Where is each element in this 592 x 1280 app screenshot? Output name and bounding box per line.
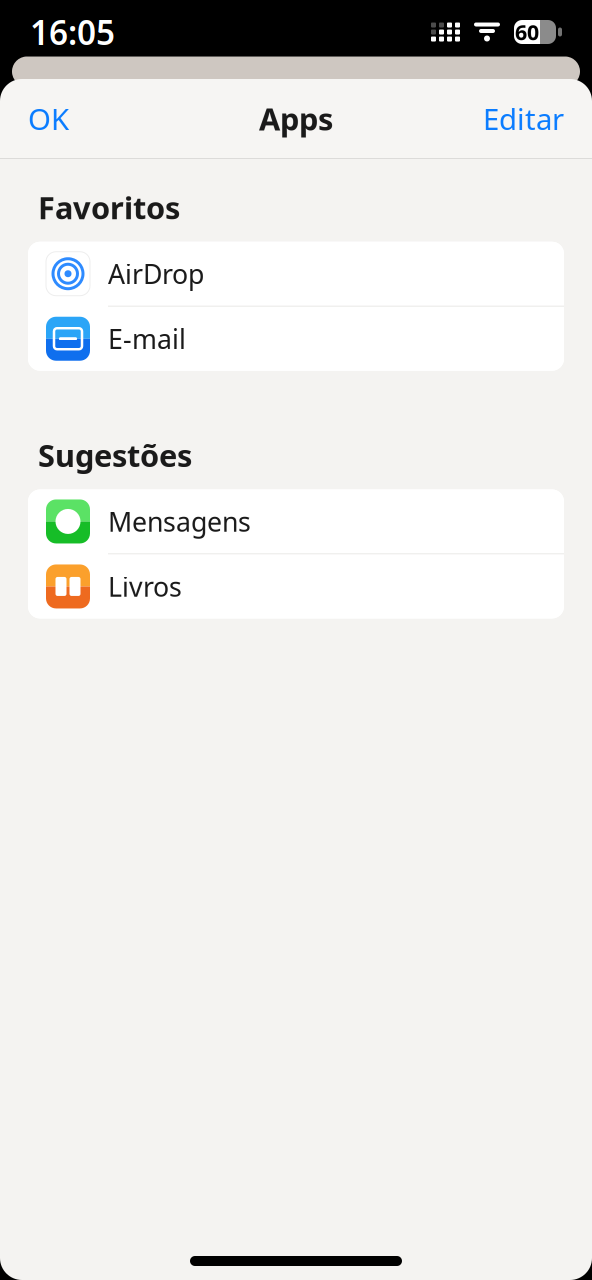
staticText: OK [28,99,69,138]
button[interactable]: Mensagens [28,489,564,554]
button[interactable]: AirDrop [28,242,564,307]
staticText: AirDrop [108,256,204,291]
staticText: Apps [259,98,333,139]
staticText: Livros [108,569,182,604]
button[interactable]: Editar [455,85,592,152]
button[interactable]: OK [0,85,97,152]
staticText: Favoritos [38,187,180,228]
staticText: Mensagens [108,504,251,539]
staticText: Editar [483,99,564,138]
button[interactable]: E-mail [28,307,564,371]
staticText: Sugestões [38,435,192,475]
staticText: 60 [515,18,539,46]
button[interactable]: Livros [28,554,564,618]
staticText: E-mail [108,321,186,356]
staticText: 16:05 [30,10,115,54]
